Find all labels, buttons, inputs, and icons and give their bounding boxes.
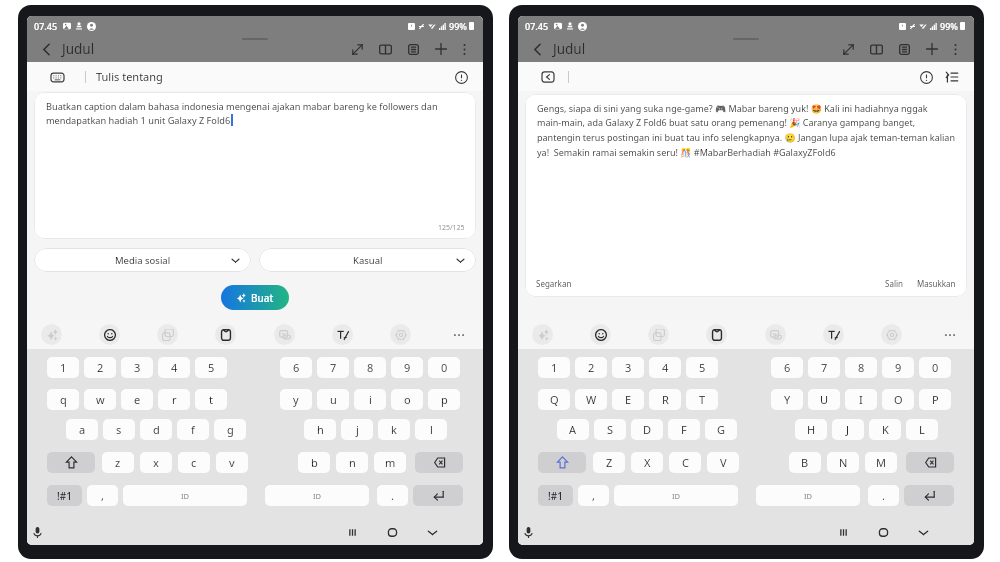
- button[interactable]: h: [304, 419, 336, 440]
- button[interactable]: Masukkan: [917, 278, 956, 289]
- button[interactable]: j: [341, 419, 373, 440]
- button[interactable]: U: [808, 389, 840, 410]
- button[interactable]: A: [557, 419, 589, 440]
- button[interactable]: Home: [872, 521, 894, 543]
- button[interactable]: Y: [771, 389, 803, 410]
- button[interactable]: Notes: [894, 39, 914, 59]
- button[interactable]: ID: [614, 485, 738, 506]
- button[interactable]: Hide keyboard: [421, 521, 443, 543]
- button[interactable]: c: [178, 452, 210, 473]
- button[interactable]: y: [280, 389, 312, 410]
- button[interactable]: Enter: [413, 485, 463, 506]
- button[interactable]: More: [448, 324, 469, 345]
- button[interactable]: Voice input: [27, 521, 48, 543]
- button[interactable]: Settings: [881, 324, 902, 345]
- button[interactable]: Book view: [866, 39, 886, 59]
- button[interactable]: Stickers: [648, 324, 669, 345]
- button[interactable]: ID: [123, 485, 247, 506]
- button[interactable]: t: [195, 389, 227, 410]
- button[interactable]: D: [631, 419, 663, 440]
- button[interactable]: s: [103, 419, 135, 440]
- button[interactable]: 8: [845, 357, 877, 378]
- button[interactable]: 3: [612, 357, 644, 378]
- button[interactable]: Shift: [538, 452, 586, 473]
- button[interactable]: P: [919, 389, 951, 410]
- button[interactable]: W: [575, 389, 607, 410]
- button[interactable]: Segarkan: [536, 278, 572, 289]
- button[interactable]: Shift: [47, 452, 95, 473]
- button[interactable]: H: [795, 419, 827, 440]
- button[interactable]: m: [374, 452, 406, 473]
- button[interactable]: 8: [354, 357, 386, 378]
- button[interactable]: .: [868, 485, 899, 506]
- button[interactable]: 5: [195, 357, 227, 378]
- button[interactable]: Home: [381, 521, 403, 543]
- button[interactable]: 7: [317, 357, 349, 378]
- button[interactable]: E: [612, 389, 644, 410]
- button[interactable]: L: [906, 419, 938, 440]
- button[interactable]: Stickers: [157, 324, 178, 345]
- button[interactable]: v: [216, 452, 248, 473]
- button[interactable]: 9: [391, 357, 423, 378]
- button[interactable]: z: [102, 452, 134, 473]
- button[interactable]: N: [827, 452, 859, 473]
- button[interactable]: g: [214, 419, 246, 440]
- button[interactable]: Buat: [221, 285, 289, 310]
- button[interactable]: More options: [454, 39, 474, 59]
- button[interactable]: a: [66, 419, 98, 440]
- button[interactable]: e: [121, 389, 153, 410]
- button[interactable]: p: [428, 389, 460, 410]
- button[interactable]: Keyboard: [47, 67, 67, 87]
- button[interactable]: 0: [919, 357, 951, 378]
- button[interactable]: ID: [265, 485, 369, 506]
- button[interactable]: 2: [575, 357, 607, 378]
- button[interactable]: Recents: [832, 521, 854, 543]
- button[interactable]: Q: [538, 389, 570, 410]
- button[interactable]: R: [649, 389, 681, 410]
- button[interactable]: Info: [451, 67, 471, 87]
- button[interactable]: w: [84, 389, 116, 410]
- button[interactable]: Back: [527, 39, 547, 59]
- button[interactable]: Hide keyboard: [912, 521, 934, 543]
- button[interactable]: Notes: [403, 39, 423, 59]
- button[interactable]: 9: [882, 357, 914, 378]
- button[interactable]: ,: [87, 485, 118, 506]
- button[interactable]: k: [378, 419, 410, 440]
- button[interactable]: Info: [916, 67, 936, 87]
- button[interactable]: AI suggest: [532, 324, 553, 345]
- button[interactable]: 4: [649, 357, 681, 378]
- button[interactable]: Back: [36, 39, 56, 59]
- button[interactable]: Settings: [390, 324, 411, 345]
- button[interactable]: 1: [47, 357, 79, 378]
- button[interactable]: Handwriting: [332, 324, 353, 345]
- button[interactable]: AI suggest: [41, 324, 62, 345]
- button[interactable]: Expand: [347, 39, 367, 59]
- button[interactable]: !#1: [538, 485, 573, 506]
- button[interactable]: I: [845, 389, 877, 410]
- button[interactable]: Format: [942, 67, 962, 87]
- button[interactable]: Split view: [274, 324, 295, 345]
- button[interactable]: x: [140, 452, 172, 473]
- button[interactable]: 2: [84, 357, 116, 378]
- button[interactable]: .: [377, 485, 408, 506]
- button[interactable]: Clipboard: [706, 324, 727, 345]
- button[interactable]: 0: [428, 357, 460, 378]
- button[interactable]: O: [882, 389, 914, 410]
- button[interactable]: !#1: [47, 485, 82, 506]
- button[interactable]: Clipboard: [215, 324, 236, 345]
- button[interactable]: B: [789, 452, 821, 473]
- button[interactable]: r: [158, 389, 190, 410]
- button[interactable]: Book view: [375, 39, 395, 59]
- button[interactable]: Add: [431, 39, 451, 59]
- button[interactable]: K: [869, 419, 901, 440]
- button[interactable]: Enter: [904, 485, 954, 506]
- button[interactable]: ID: [756, 485, 860, 506]
- button[interactable]: b: [298, 452, 330, 473]
- button[interactable]: Salin: [885, 278, 903, 289]
- button[interactable]: 4: [158, 357, 190, 378]
- button[interactable]: d: [140, 419, 172, 440]
- button[interactable]: o: [391, 389, 423, 410]
- button[interactable]: Handwriting: [823, 324, 844, 345]
- button[interactable]: Voice input: [518, 521, 539, 543]
- button[interactable]: More: [939, 324, 960, 345]
